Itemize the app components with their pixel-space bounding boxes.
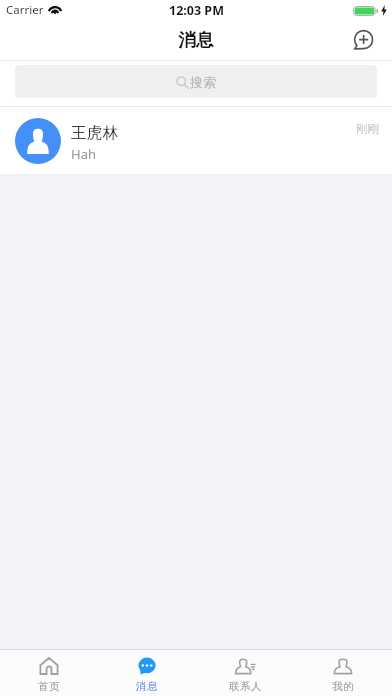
staticText: 搜索 — [190, 74, 216, 90]
staticText: Hah — [71, 145, 96, 163]
button[interactable]: 首页 — [0, 650, 98, 696]
button[interactable]: 消息 — [98, 650, 196, 696]
staticText: 首页 — [38, 680, 60, 693]
button[interactable]: New message — [347, 24, 379, 56]
staticText: 消息 — [136, 680, 158, 693]
staticText: 王虎林 — [71, 123, 119, 143]
button[interactable]: 联系人 — [196, 650, 294, 696]
button[interactable]: 我的 — [294, 650, 392, 696]
staticText: 我的 — [332, 680, 354, 693]
button[interactable]: 搜索 — [15, 65, 377, 98]
button[interactable]: 王虎林 — [0, 107, 392, 174]
staticText: 刚刚 — [356, 122, 379, 136]
staticText: 12:03 PM — [169, 2, 224, 19]
staticText: 消息 — [178, 29, 215, 51]
staticText: Carrier — [6, 2, 44, 18]
staticText: 联系人 — [229, 680, 262, 693]
